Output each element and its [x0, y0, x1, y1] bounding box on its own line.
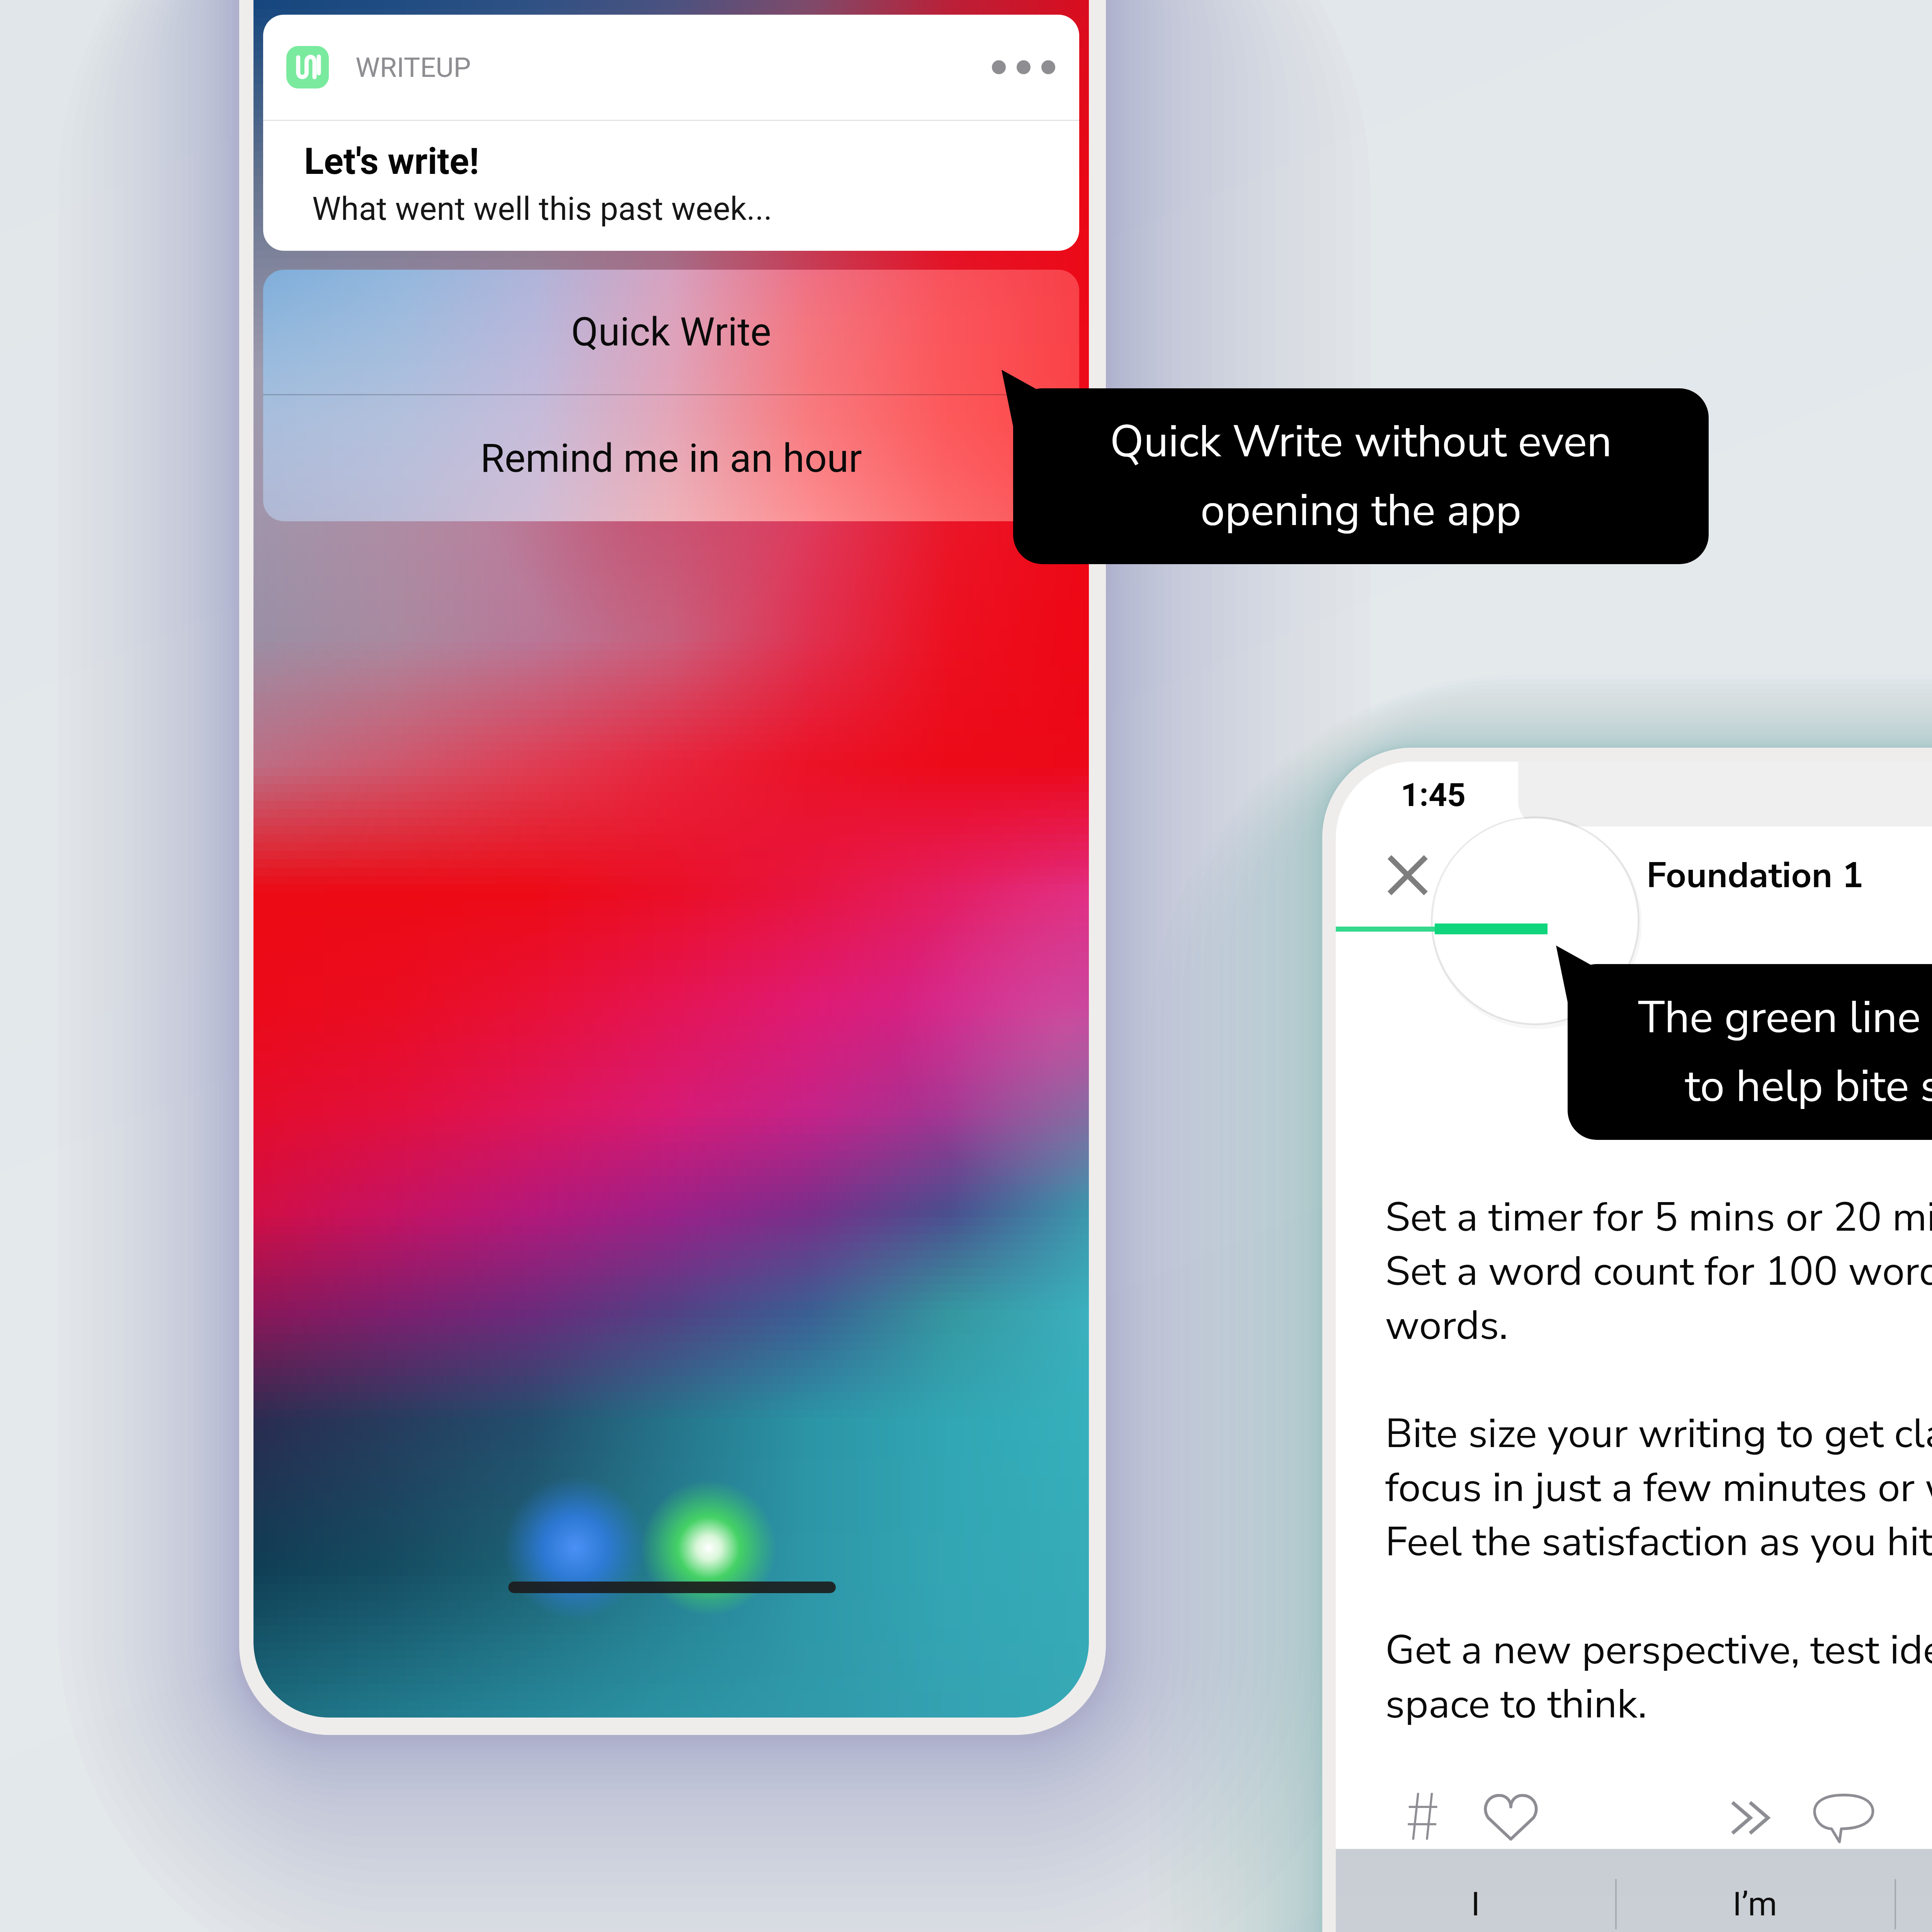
- button[interactable]: You: [1895, 1849, 1932, 1932]
- staticText: Remind me in an hour: [480, 435, 862, 481]
- button[interactable]: Add tag: [1395, 1781, 1450, 1851]
- button[interactable]: I’m: [1615, 1849, 1895, 1932]
- staticText: I’m: [1733, 1884, 1777, 1923]
- staticText: Quick Write without even opening the app: [1110, 412, 1612, 541]
- button[interactable]: Remind me in an hour: [263, 395, 1079, 521]
- staticText: Quick Write: [571, 309, 771, 355]
- button[interactable]: Quick Write: [263, 270, 1079, 394]
- button[interactable]: I: [1336, 1849, 1615, 1932]
- staticText: Foundation 1: [1646, 851, 1864, 900]
- staticText: Let's write!: [304, 140, 479, 183]
- staticText: Set a word count for 100 words or 750: [1385, 1244, 1932, 1298]
- staticText: Feel the satisfaction as you hit your go…: [1385, 1514, 1932, 1568]
- staticText: Get a new perspective, test ideas, make: [1385, 1622, 1932, 1677]
- button[interactable]: Close: [1374, 841, 1442, 909]
- staticText: What went well this past week...: [304, 190, 772, 228]
- staticText: Set a timer for 5 mins or 20 mins.: [1385, 1190, 1932, 1244]
- staticText: words.: [1385, 1298, 1508, 1352]
- staticText: space to think.: [1385, 1677, 1647, 1731]
- staticText: WRITEUP: [355, 51, 471, 83]
- staticText: I: [1471, 1884, 1480, 1923]
- staticText: 1:45: [1401, 776, 1466, 814]
- button[interactable]: Skip forward: [1719, 1783, 1786, 1853]
- staticText: Bite size your writing to get clarity an…: [1385, 1406, 1932, 1460]
- staticText: The green line tracks 5 mins to help bit…: [1638, 988, 1932, 1116]
- button[interactable]: Comment: [1802, 1782, 1886, 1854]
- button[interactable]: WRITEUP: [263, 15, 1079, 251]
- staticText: focus in just a few minutes or words a d…: [1385, 1460, 1932, 1514]
- button[interactable]: Favorite: [1472, 1782, 1549, 1852]
